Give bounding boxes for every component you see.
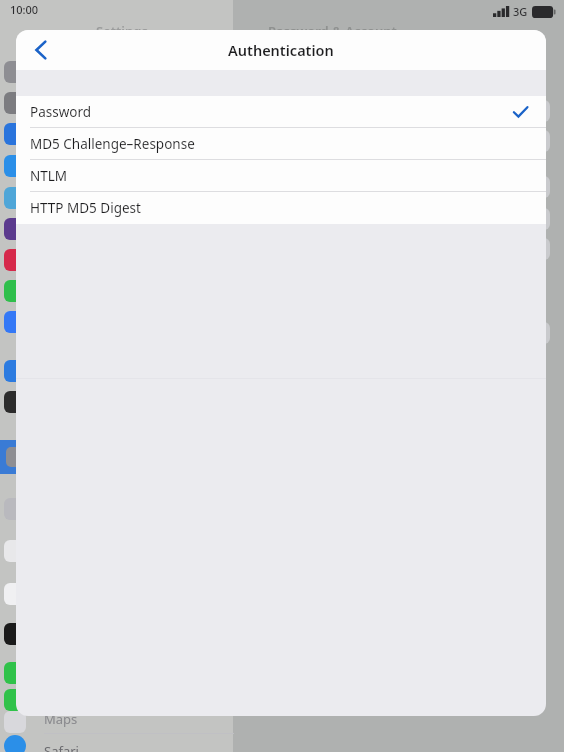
button[interactable]: HTTP MD5 Digest — [16, 192, 546, 224]
staticText: 3G — [513, 4, 528, 19]
staticText: Maps — [44, 710, 78, 728]
staticText: HTTP MD5 Digest — [30, 199, 141, 217]
staticText: Safari — [44, 742, 79, 752]
staticText: NTLM — [30, 167, 68, 185]
staticText: Authentication — [228, 40, 334, 60]
button[interactable]: MD5 Challenge–Response — [16, 128, 546, 160]
button[interactable]: Back — [22, 31, 60, 69]
staticText: 10:00 — [10, 2, 39, 17]
staticText: Password & Account — [268, 22, 397, 40]
button[interactable]: NTLM — [16, 160, 546, 192]
staticText: Settings — [96, 22, 148, 40]
staticText: Password — [30, 103, 92, 121]
button[interactable]: Password — [16, 96, 546, 128]
staticText: MD5 Challenge–Response — [30, 135, 195, 153]
